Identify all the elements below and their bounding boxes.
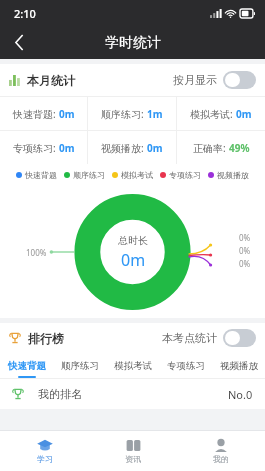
staticText: 专项练习 bbox=[167, 360, 205, 372]
button[interactable]: 视频播放: bbox=[88, 131, 176, 164]
button[interactable]: 我的排名 bbox=[0, 379, 265, 409]
button[interactable]: 学习 bbox=[0, 431, 89, 471]
button[interactable]: 本月统计 bbox=[0, 64, 265, 96]
staticText: 视频播放 bbox=[220, 360, 258, 372]
staticText: 快速背题: bbox=[13, 107, 59, 121]
staticText: 视频播放 bbox=[217, 170, 249, 180]
staticText: 模拟考试 bbox=[121, 170, 153, 180]
staticText: 总时长 bbox=[118, 234, 148, 247]
staticText: 我的 bbox=[213, 454, 229, 464]
staticText: 顺序练习 bbox=[61, 360, 99, 372]
button[interactable]: 顺序练习: bbox=[88, 97, 176, 130]
staticText: 0m bbox=[59, 107, 75, 121]
staticText: 2:10 bbox=[14, 6, 36, 21]
staticText: 我的排名 bbox=[38, 387, 82, 401]
button[interactable]: 资讯 bbox=[89, 431, 177, 471]
staticText: 正确率: bbox=[193, 141, 229, 155]
button[interactable]: 我的 bbox=[177, 431, 265, 471]
staticText: No.0 bbox=[228, 387, 253, 402]
staticText: 0% bbox=[239, 258, 251, 269]
staticText: 学时统计 bbox=[105, 34, 161, 52]
button[interactable]: 排行榜 bbox=[0, 323, 265, 353]
button[interactable]: 模拟考试: bbox=[177, 97, 265, 130]
staticText: 快速背题 bbox=[25, 170, 57, 180]
button[interactable]: 模拟考试 bbox=[106, 353, 159, 378]
button[interactable]: 正确率: bbox=[177, 131, 265, 164]
button[interactable]: 视频播放 bbox=[212, 353, 265, 378]
staticText: 按月显示 bbox=[173, 73, 217, 87]
staticText: 顺序练习 bbox=[73, 170, 105, 180]
button[interactable]: Toggle bbox=[223, 71, 256, 89]
button[interactable]: Toggle bbox=[223, 329, 256, 347]
staticText: 0m bbox=[147, 141, 163, 155]
staticText: 快速背题 bbox=[8, 360, 46, 372]
staticText: 0% bbox=[239, 245, 251, 256]
staticText: 100% bbox=[26, 247, 47, 258]
staticText: 49% bbox=[229, 141, 250, 155]
staticText: 1m bbox=[147, 107, 163, 121]
button[interactable]: 专项练习: bbox=[0, 131, 87, 164]
button[interactable]: 快速背题 bbox=[0, 353, 53, 378]
staticText: 专项练习: bbox=[13, 141, 59, 155]
staticText: 排行榜 bbox=[28, 331, 64, 346]
staticText: 专项练习 bbox=[169, 170, 201, 180]
staticText: 本月统计 bbox=[27, 73, 75, 88]
staticText: 模拟考试 bbox=[114, 360, 152, 372]
staticText: 模拟考试: bbox=[190, 107, 236, 121]
staticText: 0m bbox=[236, 107, 252, 121]
button[interactable]: Back bbox=[0, 26, 38, 59]
staticText: 0m bbox=[59, 141, 75, 155]
staticText: 视频播放: bbox=[101, 141, 147, 155]
staticText: 资讯 bbox=[125, 454, 141, 464]
button[interactable]: 专项练习 bbox=[159, 353, 212, 378]
button[interactable]: 快速背题: bbox=[0, 97, 87, 130]
staticText: 0m bbox=[121, 249, 146, 271]
staticText: 本考点统计 bbox=[162, 331, 217, 345]
staticText: 0% bbox=[239, 232, 251, 243]
staticText: 学习 bbox=[37, 454, 53, 464]
staticText: 顺序练习: bbox=[101, 107, 147, 121]
button[interactable]: 顺序练习 bbox=[53, 353, 106, 378]
